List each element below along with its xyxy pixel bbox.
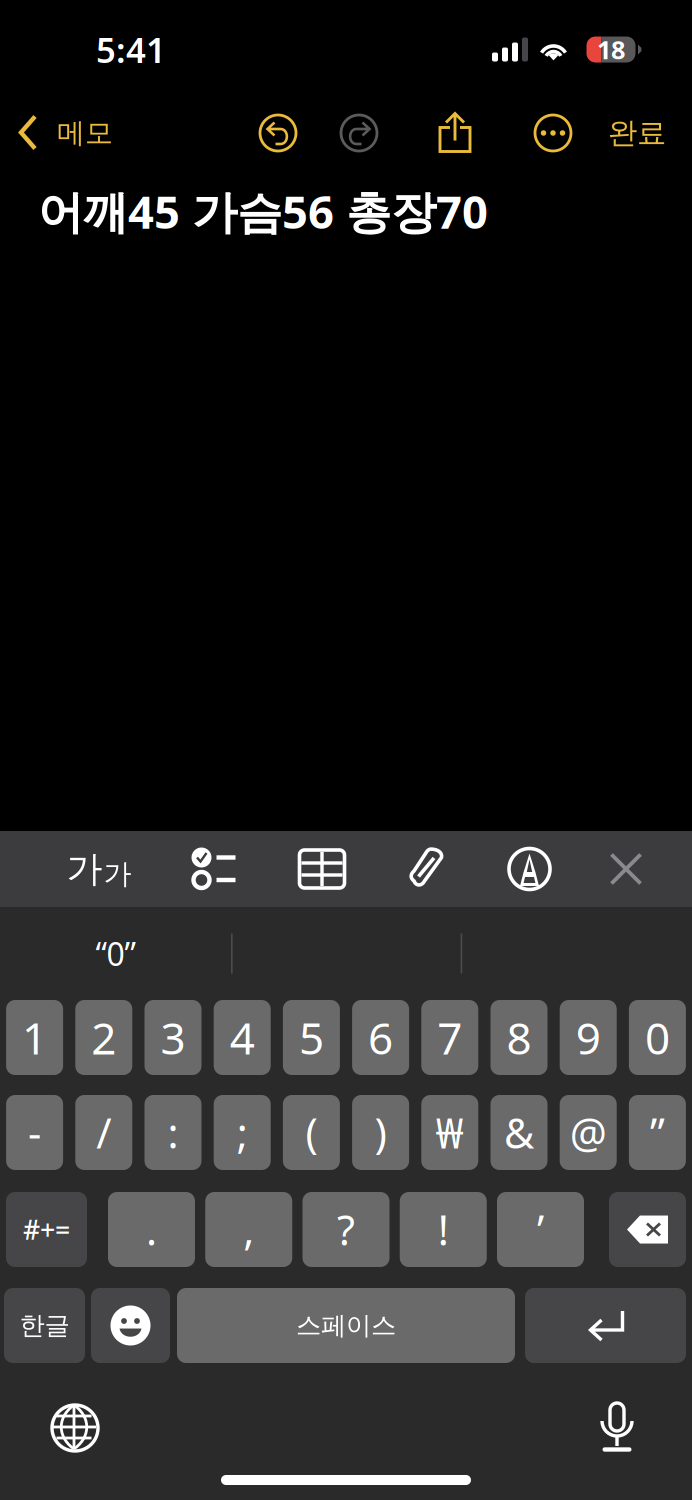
staticText: 완료 — [608, 115, 666, 151]
staticText: . — [146, 1202, 157, 1257]
button[interactable]: Markup — [494, 839, 564, 899]
staticText: : — [167, 1105, 178, 1160]
staticText: ’ — [537, 1202, 544, 1257]
staticText: / — [96, 1105, 111, 1160]
staticText: 가 — [66, 847, 102, 891]
staticText: 6 — [368, 1008, 393, 1067]
staticText: - — [28, 1105, 41, 1160]
staticText: 0 — [645, 1008, 670, 1067]
staticText: 5:41 — [96, 26, 166, 72]
button[interactable]: - — [6, 1095, 63, 1170]
button[interactable]: 7 — [421, 1000, 478, 1075]
button[interactable]: More — [534, 114, 572, 152]
staticText: , — [243, 1202, 254, 1257]
button[interactable]: 스페이스 — [177, 1288, 515, 1363]
button[interactable]: 1 — [6, 1000, 63, 1075]
button[interactable]: ₩ — [421, 1095, 478, 1170]
button[interactable]: Emoji — [91, 1288, 170, 1363]
staticText: 3 — [160, 1008, 185, 1067]
button[interactable]: ; — [214, 1095, 271, 1170]
staticText: ( — [305, 1105, 317, 1160]
button[interactable]: / — [75, 1095, 132, 1170]
button[interactable]: @ — [560, 1095, 617, 1170]
button[interactable]: 한글 — [4, 1288, 85, 1363]
button[interactable]: : — [144, 1095, 201, 1170]
button[interactable]: 9 — [560, 1000, 617, 1075]
button[interactable]: 4 — [214, 1000, 271, 1075]
button[interactable]: ) — [352, 1095, 409, 1170]
button[interactable]: ( — [283, 1095, 340, 1170]
button[interactable]: Checklist — [178, 839, 248, 899]
button[interactable]: Dismiss — [591, 839, 661, 899]
button[interactable]: 5 — [283, 1000, 340, 1075]
button[interactable]: Attach — [392, 839, 462, 899]
staticText: #+= — [23, 1212, 70, 1247]
staticText: ) — [375, 1105, 387, 1160]
staticText: ; — [237, 1105, 248, 1160]
staticText: 4 — [230, 1008, 255, 1067]
button[interactable]: Redo — [340, 114, 378, 152]
button[interactable]: & — [490, 1095, 547, 1170]
staticText: 가 — [103, 857, 131, 891]
staticText: 1 — [22, 1008, 47, 1067]
button[interactable]: 8 — [490, 1000, 547, 1075]
button[interactable]: 메모 — [0, 106, 121, 159]
staticText: 어깨45 가슴56 총장70 — [38, 181, 488, 241]
button[interactable]: ” — [629, 1095, 686, 1170]
staticText: 5 — [299, 1008, 324, 1067]
staticText: & — [504, 1105, 534, 1160]
button[interactable]: Format — [61, 839, 137, 899]
staticText: 한글 — [19, 1310, 69, 1341]
button[interactable]: Table — [287, 839, 357, 899]
staticText: ” — [650, 1105, 665, 1160]
button[interactable]: 0 — [629, 1000, 686, 1075]
staticText: 스페이스 — [296, 1310, 396, 1341]
button[interactable]: 6 — [352, 1000, 409, 1075]
button[interactable]: Share — [438, 112, 472, 153]
button[interactable]: Undo — [259, 114, 297, 152]
button[interactable]: . — [108, 1192, 195, 1267]
staticText: 7 — [437, 1008, 462, 1067]
button[interactable]: 완료 — [599, 107, 675, 159]
button[interactable]: ’ — [497, 1192, 584, 1267]
button[interactable]: , — [205, 1192, 292, 1267]
staticText: 18 — [597, 33, 625, 66]
staticText: ? — [337, 1202, 355, 1257]
staticText: “0” — [95, 932, 135, 975]
button[interactable]: Return — [525, 1288, 686, 1363]
staticText: 9 — [576, 1008, 601, 1067]
button[interactable]: #+= — [6, 1192, 87, 1267]
button[interactable]: ! — [400, 1192, 487, 1267]
button[interactable]: Next keyboard — [38, 1394, 112, 1462]
staticText: ! — [438, 1202, 449, 1257]
staticText: 8 — [506, 1008, 531, 1067]
button[interactable]: ? — [302, 1192, 389, 1267]
staticText: @ — [570, 1105, 607, 1160]
button[interactable]: Delete — [609, 1192, 686, 1267]
staticText: 2 — [91, 1008, 116, 1067]
button[interactable]: 2 — [75, 1000, 132, 1075]
button[interactable]: Dictate — [586, 1393, 648, 1463]
staticText: 메모 — [57, 116, 113, 150]
button[interactable]: 3 — [144, 1000, 201, 1075]
staticText: ₩ — [436, 1105, 464, 1160]
